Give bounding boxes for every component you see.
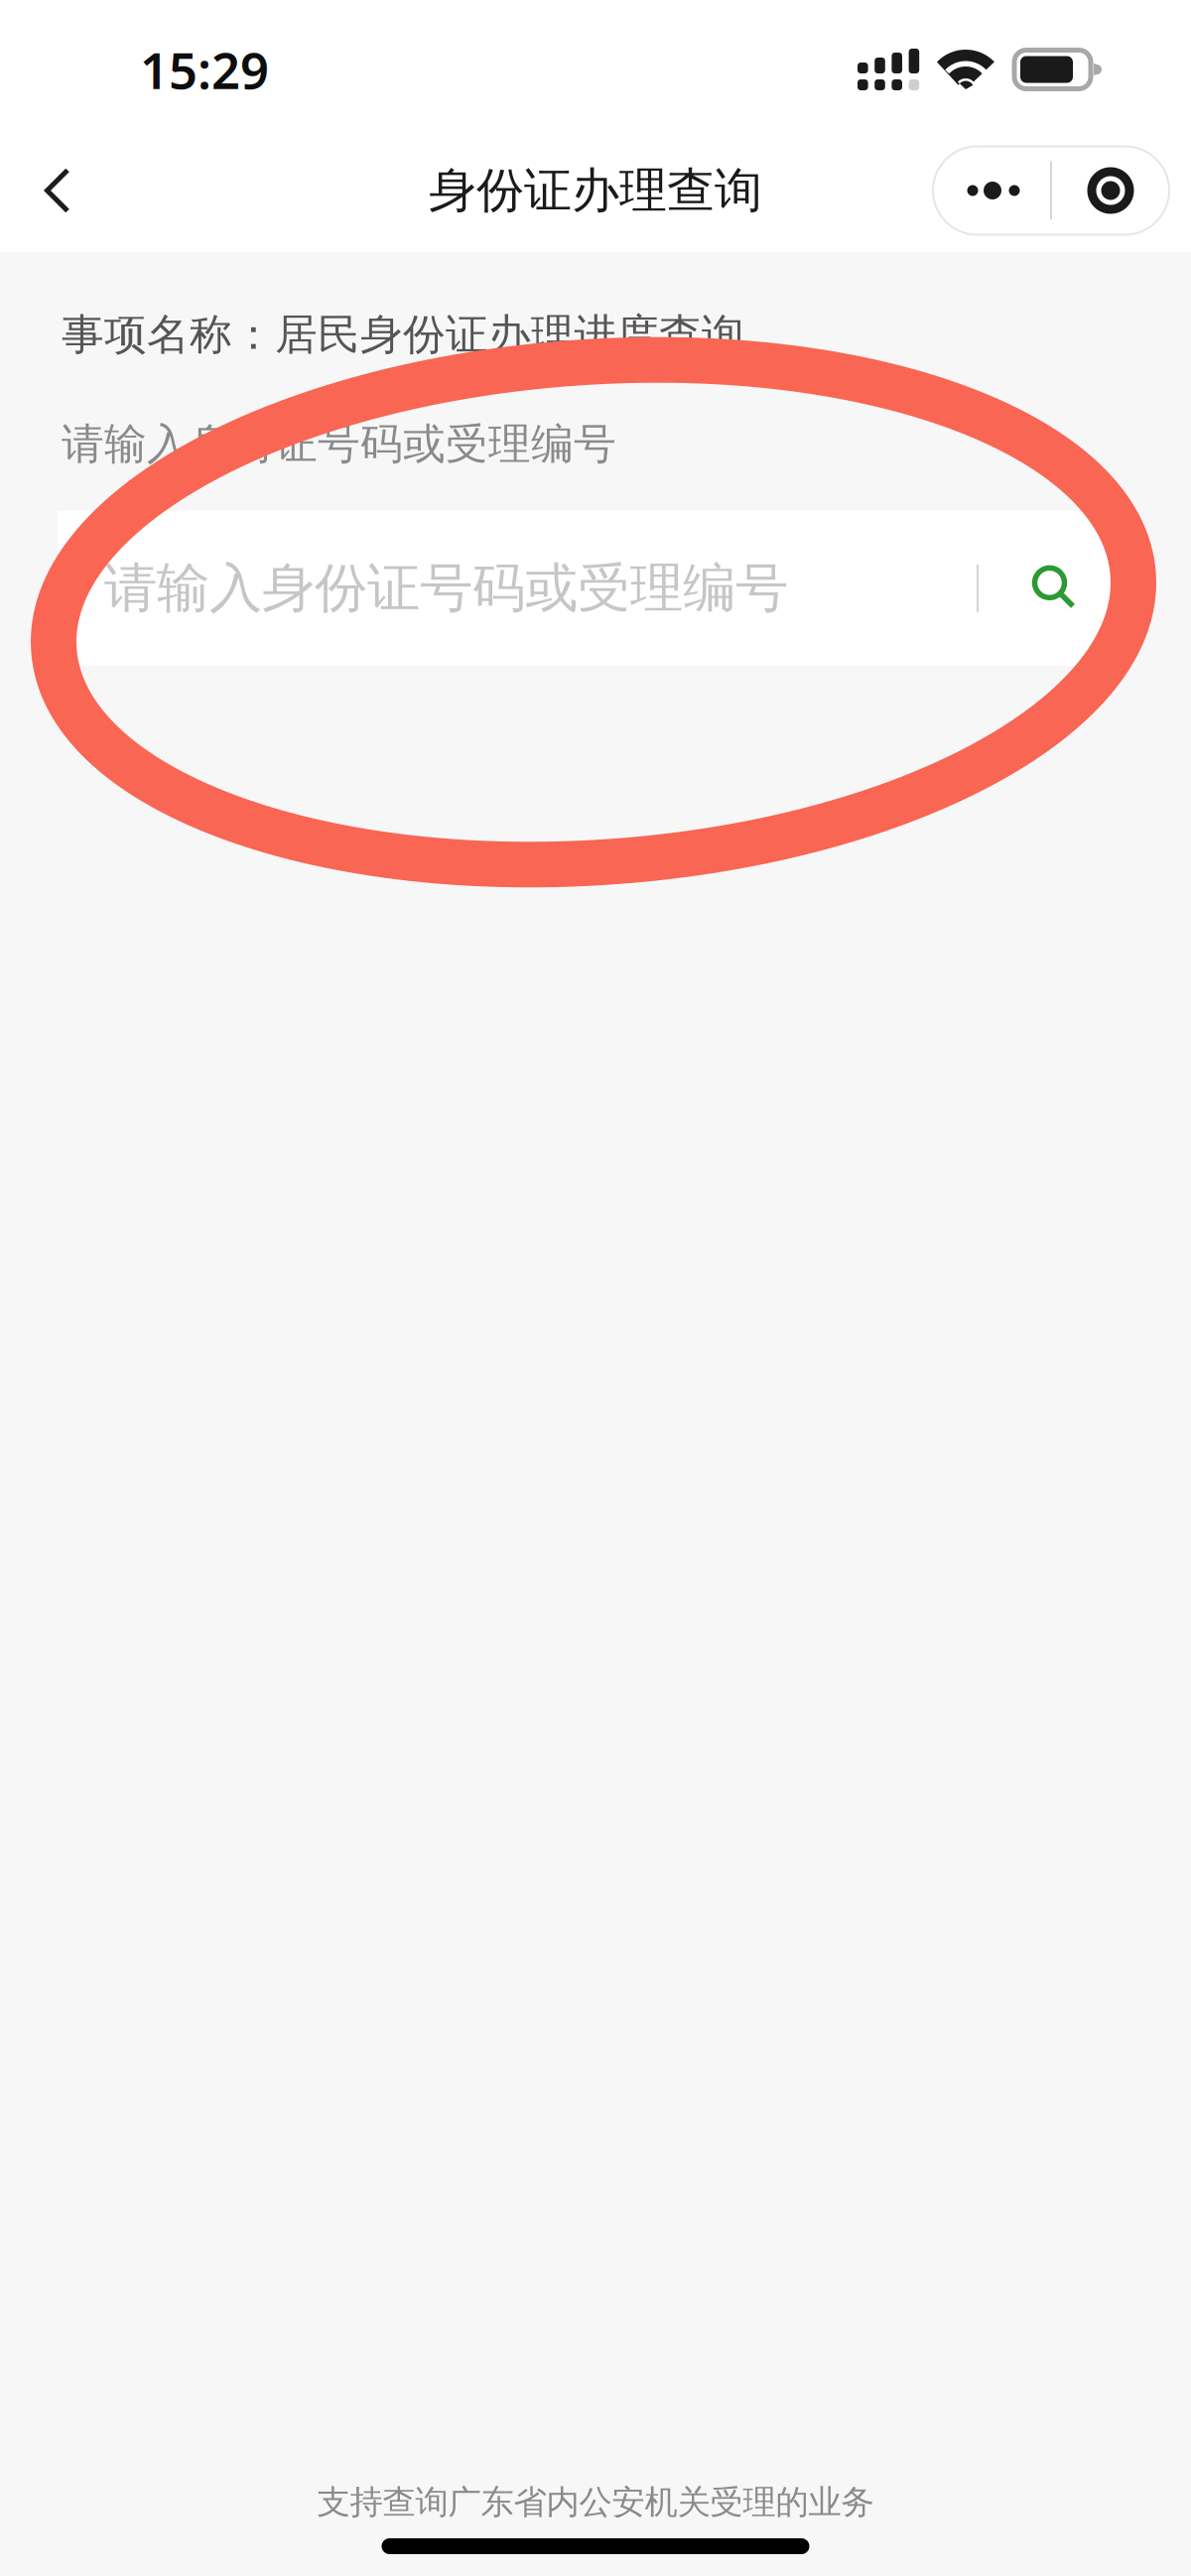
staticText: 请输入身份证号码或受理编号: [62, 418, 616, 470]
staticText: 身份证办理查询: [429, 161, 762, 220]
button[interactable]: More options: [933, 146, 1050, 235]
staticText: 15:29: [140, 36, 269, 103]
staticText: 支持查询广东省内公安机关受理的业务: [317, 2482, 874, 2522]
button[interactable]: Search: [979, 511, 1133, 666]
button[interactable]: Back: [0, 129, 110, 252]
staticText: 事项名称：居民身份证办理进度查询: [62, 309, 744, 361]
button[interactable]: Close mini program: [1052, 146, 1169, 235]
staticText: 请输入身份证号码或受理编号: [104, 556, 788, 621]
